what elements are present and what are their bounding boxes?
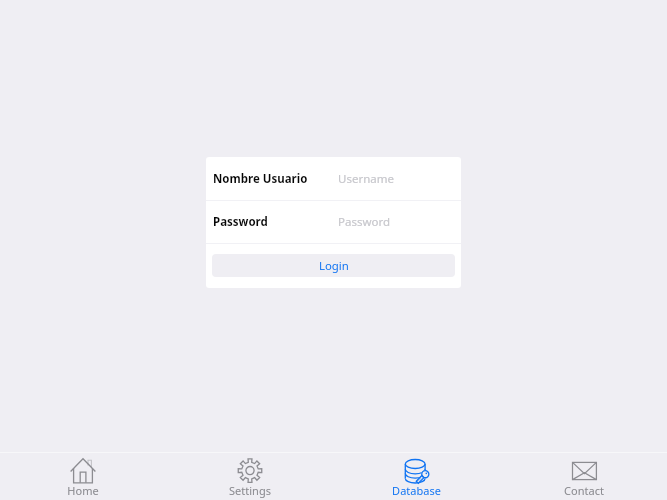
staticText: Nombre Usuario — [213, 171, 308, 187]
staticText: Settings — [229, 483, 271, 498]
staticText: Password — [338, 214, 391, 230]
staticText: Contact — [564, 483, 604, 498]
button[interactable]: Password — [206, 201, 461, 243]
staticText: Username — [338, 171, 394, 187]
staticText: Database — [392, 483, 441, 498]
staticText: Home — [67, 483, 99, 498]
button[interactable]: Contact — [500, 453, 667, 500]
staticText: Login — [319, 258, 349, 274]
button[interactable]: Settings — [166, 453, 333, 500]
button[interactable]: Home — [0, 453, 166, 500]
button[interactable]: Database — [333, 453, 500, 500]
button[interactable]: Nombre Usuario — [206, 157, 461, 200]
button[interactable]: Login — [212, 254, 455, 277]
staticText: Password — [213, 214, 268, 230]
